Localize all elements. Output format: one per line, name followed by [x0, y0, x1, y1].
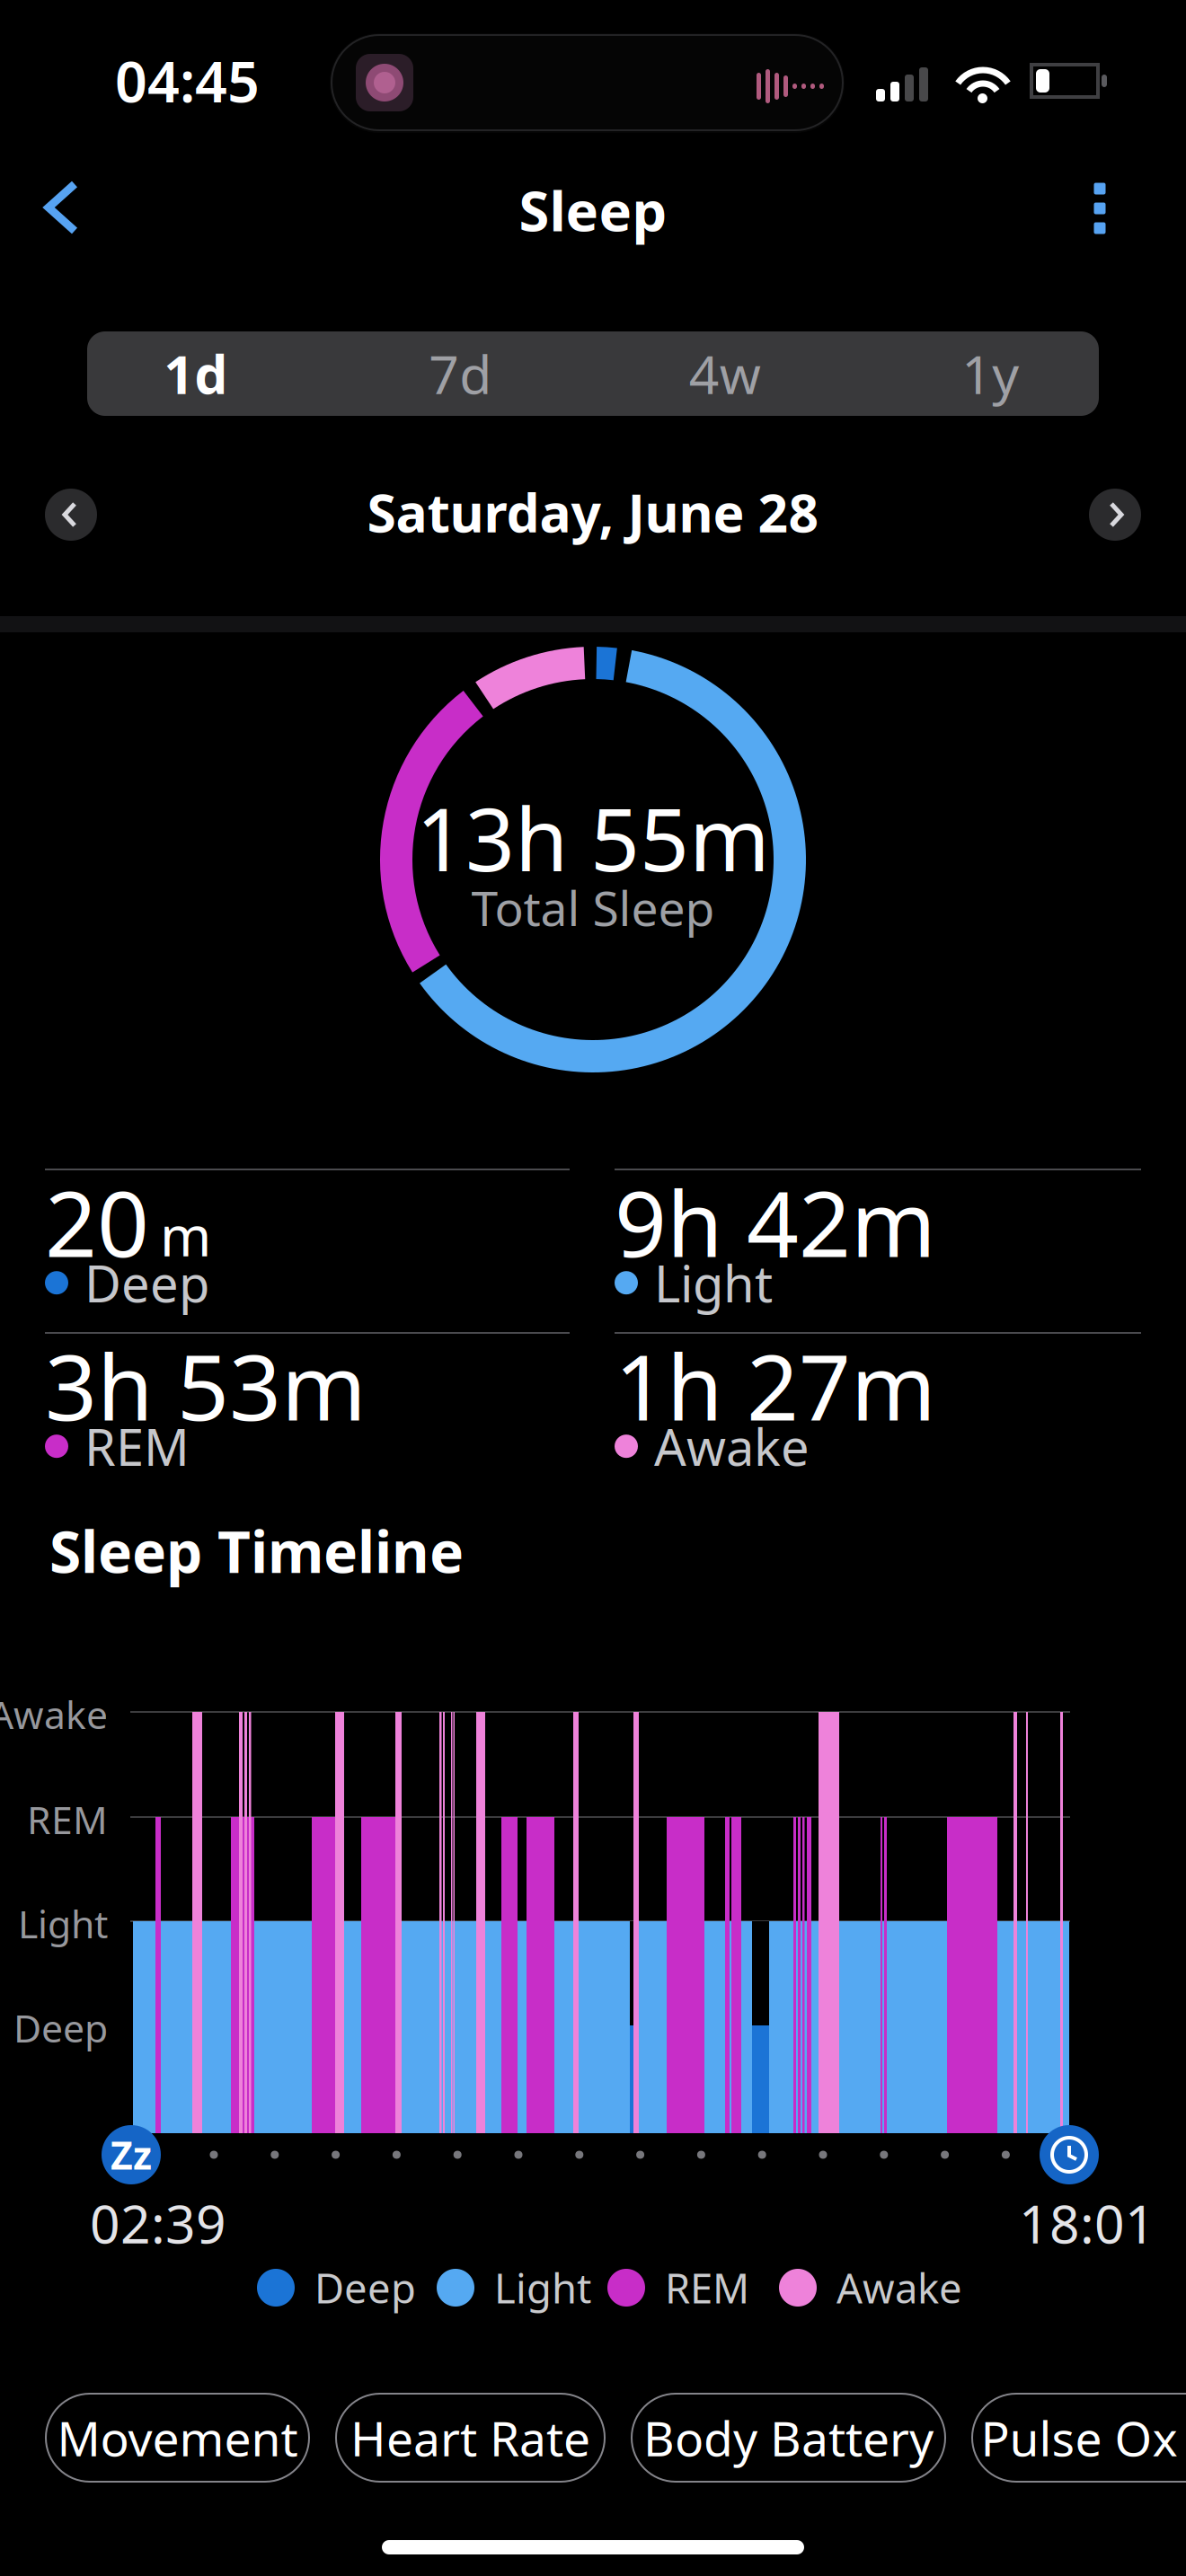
button[interactable]	[1073, 162, 1127, 255]
staticText: Saturday, June 28	[367, 477, 819, 547]
staticText: REM	[27, 1794, 108, 1845]
staticText: Deep	[314, 2261, 416, 2315]
staticText: Light	[654, 1249, 773, 1316]
button[interactable]	[1089, 489, 1141, 541]
staticText: 9h 42m	[615, 1161, 936, 1282]
staticText: Total Sleep	[471, 876, 715, 939]
staticText: Deep	[84, 1249, 209, 1316]
staticText: 1d	[164, 339, 227, 409]
button[interactable]: 4w	[593, 331, 846, 416]
button[interactable]	[45, 489, 97, 541]
staticText: m	[160, 1198, 211, 1271]
staticText: Awake	[654, 1413, 810, 1480]
staticText: 20	[45, 1161, 149, 1282]
staticText: 7d	[429, 339, 492, 409]
staticText: 4w	[689, 339, 761, 409]
staticText: Zz	[111, 2129, 152, 2180]
staticText: 18:01	[1019, 2188, 1155, 2258]
staticText: 1y	[962, 339, 1019, 409]
button[interactable]: 7d	[340, 331, 593, 416]
staticText: 02:39	[90, 2188, 226, 2258]
button[interactable]: Heart Rate	[335, 2393, 606, 2483]
button[interactable]: 1y	[846, 331, 1099, 416]
staticText: Heart Rate	[350, 2406, 590, 2469]
staticText: Body Battery	[643, 2406, 934, 2469]
staticText: 3h 53m	[45, 1325, 367, 1446]
staticText: Awake	[0, 1689, 108, 1740]
staticText: Light	[494, 2261, 591, 2315]
staticText: Pulse Ox	[981, 2406, 1177, 2469]
button[interactable]: Body Battery	[631, 2393, 946, 2483]
staticText: Awake	[836, 2261, 962, 2315]
staticText: 1h 27m	[615, 1325, 936, 1446]
staticText: Light	[18, 1898, 108, 1949]
staticText: Sleep Timeline	[49, 1513, 464, 1589]
staticText: Sleep	[519, 173, 667, 246]
button[interactable]	[18, 162, 111, 255]
staticText: 04:45	[115, 43, 260, 118]
staticText: Movement	[57, 2406, 298, 2469]
staticText: 13h 55m	[416, 781, 770, 895]
button[interactable]: Movement	[45, 2393, 310, 2483]
staticText: Deep	[13, 2002, 108, 2053]
button[interactable]: 1d	[87, 331, 340, 416]
button[interactable]: Pulse Ox	[971, 2393, 1186, 2483]
staticText: REM	[84, 1413, 190, 1480]
staticText: REM	[665, 2261, 749, 2315]
